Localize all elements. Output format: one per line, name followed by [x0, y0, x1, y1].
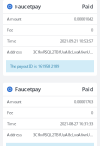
button[interactable]: Faucetpay payout, paid [3, 0, 97, 76]
staticText: 0.00001763 [74, 99, 93, 104]
staticText: Amount [7, 16, 21, 21]
staticText: 2021-09-21 10:53:57 [60, 38, 93, 43]
staticText: 3CfkvRSQL2TBfUyA8cLxoAfwnU... [33, 49, 93, 54]
staticText: Time [7, 38, 16, 43]
staticText: The payout ID is 161958 2189 [10, 63, 59, 69]
staticText: Faucetpay [15, 3, 41, 10]
staticText: Faucetpay [15, 86, 41, 93]
staticText: Address [7, 49, 22, 54]
staticText: 2021-08-27 16:31:33 [60, 121, 93, 126]
staticText: Amount [7, 99, 21, 104]
staticText: Address [7, 132, 22, 137]
staticText: Fee [7, 110, 13, 115]
staticText: 0.00001042 [74, 16, 93, 21]
staticText: Paid [82, 3, 93, 10]
staticText: 0 [91, 27, 93, 32]
staticText: Time [7, 121, 16, 126]
staticText: 0 [91, 110, 93, 115]
staticText: Paid [82, 86, 93, 93]
button[interactable]: Faucetpay payout, paid [3, 83, 97, 146]
staticText: 3CfkvRSQL2TBfUyA8cLxoAfwnU... [33, 132, 93, 137]
staticText: Fee [7, 27, 13, 32]
